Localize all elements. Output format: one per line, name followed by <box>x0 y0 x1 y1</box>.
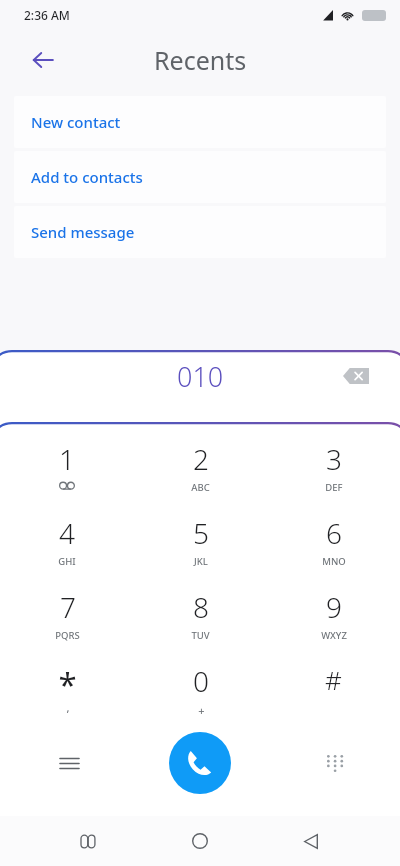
staticText: 0 <box>193 662 209 700</box>
button[interactable]: Home <box>178 819 222 863</box>
button[interactable]: Back <box>289 819 333 863</box>
staticText: 3 <box>326 440 342 478</box>
staticText: # <box>325 662 342 697</box>
staticText: 010 <box>177 358 224 395</box>
button[interactable]: Call <box>169 732 231 794</box>
button[interactable]: 7 <box>0 588 134 662</box>
staticText: ABC <box>191 481 210 494</box>
staticText: PQRS <box>55 629 80 642</box>
button[interactable]: 0 <box>134 662 267 736</box>
button[interactable]: 3 <box>267 440 400 514</box>
staticText: 1 <box>59 440 75 478</box>
staticText: WXYZ <box>321 629 347 642</box>
staticText: New contact <box>31 112 121 132</box>
staticText: 7 <box>60 588 76 626</box>
button[interactable]: 8 <box>134 588 267 662</box>
button[interactable]: 6 <box>267 514 400 588</box>
staticText: TUV <box>191 629 210 642</box>
button[interactable]: 5 <box>134 514 267 588</box>
button[interactable]: Send message <box>14 206 386 258</box>
button[interactable]: Back <box>22 39 64 81</box>
staticText: MNO <box>322 555 346 568</box>
button[interactable]: Backspace <box>338 358 374 394</box>
staticText: , <box>66 700 70 715</box>
staticText: 6 <box>326 514 342 552</box>
staticText: * <box>58 662 77 695</box>
staticText: Add to contacts <box>31 167 143 187</box>
button[interactable]: # <box>267 662 400 736</box>
staticText: 4 <box>59 514 75 552</box>
staticText: 5 <box>193 514 209 552</box>
button[interactable]: Dialpad <box>314 742 356 784</box>
staticText: DEF <box>325 481 343 494</box>
button[interactable]: New contact <box>14 96 386 148</box>
staticText: Recents <box>154 43 247 77</box>
button[interactable]: Add to contacts <box>14 151 386 203</box>
button[interactable]: 2 <box>134 440 267 514</box>
staticText: 9 <box>326 588 342 626</box>
button[interactable]: * <box>0 662 134 736</box>
staticText: 2:36 AM <box>24 7 70 23</box>
button[interactable]: Recent apps <box>67 819 111 863</box>
button[interactable]: More options <box>48 742 90 784</box>
button[interactable]: 1 <box>0 440 134 514</box>
staticText: GHI <box>58 555 76 568</box>
staticText: JKL <box>194 555 208 568</box>
staticText: 2 <box>193 440 209 478</box>
button[interactable]: 4 <box>0 514 134 588</box>
staticText: Send message <box>31 222 135 242</box>
staticText: 8 <box>193 588 209 626</box>
button[interactable]: 9 <box>267 588 400 662</box>
staticText: + <box>198 703 205 718</box>
